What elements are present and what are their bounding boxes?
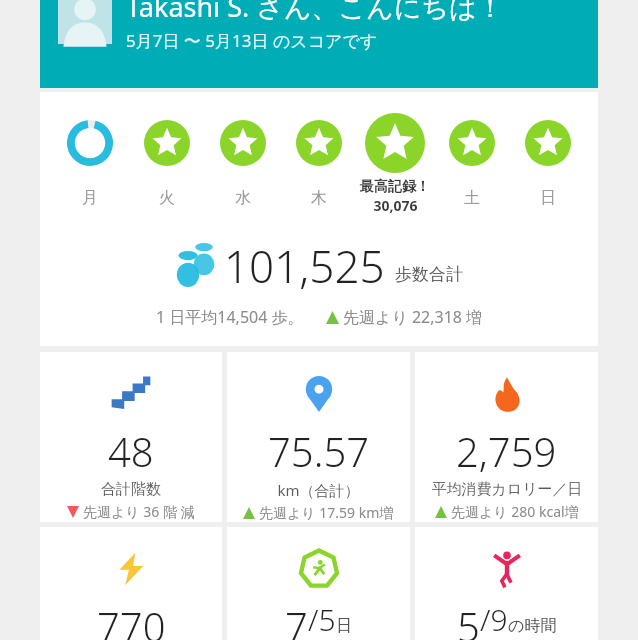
staticText: /5 <box>308 599 336 640</box>
button[interactable]: Floors climbed <box>40 352 222 522</box>
staticText: km（合計） <box>277 480 360 500</box>
staticText: 歩数合計 <box>395 264 463 285</box>
staticText: 月 <box>82 188 98 208</box>
staticText: 先週より 36 階 減 <box>83 502 195 521</box>
staticText: /9 <box>480 599 508 640</box>
button[interactable]: Hourly activity <box>415 527 598 640</box>
staticText: 5月7日 〜 5月13日 のスコアです <box>126 29 378 52</box>
staticText: 1 日平均14,504 歩。 <box>156 306 304 328</box>
staticText: 先週より 22,318 増 <box>343 306 483 328</box>
button[interactable]: 土 <box>436 92 508 208</box>
staticText: 2,759 <box>456 424 557 478</box>
staticText: 48 <box>108 424 154 478</box>
button[interactable]: 木 <box>283 92 355 208</box>
other: Active minutes <box>113 551 149 587</box>
other: Calories <box>488 375 526 413</box>
staticText: 日 <box>540 188 556 208</box>
staticText: 合計階数 <box>101 480 161 499</box>
staticText: 火 <box>159 188 175 208</box>
button[interactable]: Profile photo <box>40 0 598 88</box>
staticText: Takashi S. さん、こんにちは！ <box>126 0 504 25</box>
other: Exercise days <box>297 547 341 591</box>
staticText: 最高記録！ <box>360 178 430 196</box>
button[interactable]: 火 <box>131 92 203 208</box>
button[interactable]: 日 <box>512 92 584 208</box>
staticText: 先週より 17.59 km増 <box>259 503 394 522</box>
button[interactable]: Active minutes <box>40 527 222 640</box>
staticText: 75.57 <box>268 424 370 478</box>
other: Hourly activity <box>487 549 527 589</box>
staticText: 日 <box>336 616 352 636</box>
staticText: 101,525 <box>224 236 385 296</box>
staticText: 平均消費カロリー／日 <box>431 480 583 499</box>
other: Profile photo <box>58 0 112 44</box>
other: Distance <box>299 374 339 414</box>
staticText: 770 <box>97 599 166 640</box>
staticText: 土 <box>464 188 480 208</box>
staticText: 先週より 280 kcal増 <box>451 502 579 521</box>
other: Floors climbed <box>109 372 153 416</box>
staticText: 30,076 <box>373 196 418 215</box>
button[interactable]: Distance <box>227 352 410 522</box>
staticText: 7 <box>285 599 308 640</box>
staticText: の時間 <box>508 616 557 636</box>
button[interactable]: Calories <box>415 352 598 522</box>
button[interactable]: Exercise days <box>227 527 410 640</box>
staticText: 木 <box>311 188 327 208</box>
staticText: 水 <box>235 188 251 208</box>
button[interactable]: 最高記録！ <box>359 92 431 215</box>
staticText: 5 <box>457 599 480 640</box>
button[interactable]: 月 <box>54 92 126 208</box>
button[interactable]: 101,525 <box>40 236 598 328</box>
button[interactable]: 水 <box>207 92 279 208</box>
